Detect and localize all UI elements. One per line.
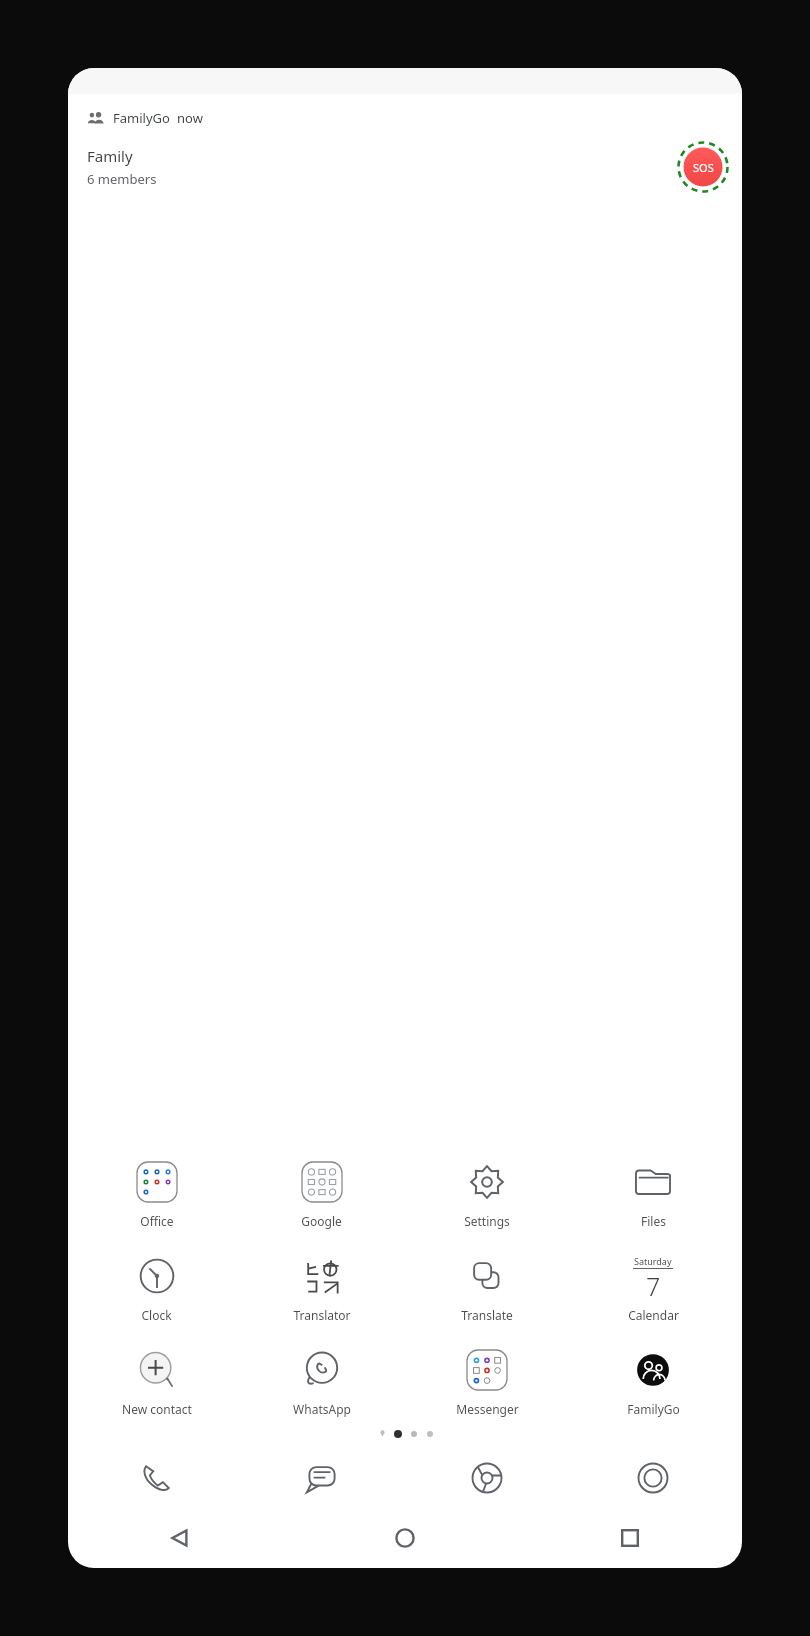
button[interactable]: Google	[239, 1157, 404, 1231]
button[interactable]: Translator	[239, 1251, 404, 1325]
staticText: Messenger	[456, 1401, 519, 1417]
button[interactable]: Camera	[570, 1452, 736, 1504]
button[interactable]: FamilyGo	[71, 96, 739, 206]
button[interactable]: FamilyGo	[570, 1345, 736, 1419]
staticText: Files	[641, 1213, 666, 1229]
button[interactable]: Translate	[404, 1251, 570, 1325]
staticText: Translator	[293, 1307, 351, 1323]
button[interactable]: Files	[570, 1157, 736, 1231]
button[interactable]: Office	[74, 1157, 239, 1231]
button[interactable]: Settings	[404, 1157, 570, 1231]
staticText: SOS	[693, 160, 714, 175]
button[interactable]: Recents	[517, 1516, 742, 1560]
button[interactable]: Home	[292, 1516, 517, 1560]
button[interactable]: Back	[68, 1516, 292, 1560]
staticText: FamilyGo	[113, 109, 170, 127]
staticText: New contact	[122, 1401, 192, 1417]
staticText: Calendar	[628, 1307, 679, 1323]
staticText: FamilyGo	[627, 1401, 680, 1417]
staticText: Saturday	[634, 1255, 672, 1267]
staticText: WhatsApp	[293, 1401, 351, 1417]
button[interactable]: Chrome	[404, 1452, 570, 1504]
button[interactable]: Messages	[239, 1452, 404, 1504]
staticText: Google	[301, 1213, 342, 1229]
staticText: Office	[140, 1213, 174, 1229]
button[interactable]: WhatsApp	[239, 1345, 404, 1419]
staticText: Settings	[464, 1213, 510, 1229]
staticText: Translate	[461, 1307, 513, 1323]
button[interactable]: Messenger	[404, 1345, 570, 1419]
staticText: Clock	[141, 1307, 172, 1323]
button[interactable]: Phone	[74, 1452, 239, 1504]
button[interactable]: Clock	[74, 1251, 239, 1325]
staticText: 6 members	[87, 170, 157, 188]
staticText: Family	[87, 146, 133, 166]
staticText: 7	[646, 1269, 661, 1299]
button[interactable]: Saturday	[570, 1251, 736, 1325]
staticText: now	[177, 109, 203, 127]
button[interactable]: SOS	[677, 141, 729, 193]
button[interactable]: New contact	[74, 1345, 239, 1419]
